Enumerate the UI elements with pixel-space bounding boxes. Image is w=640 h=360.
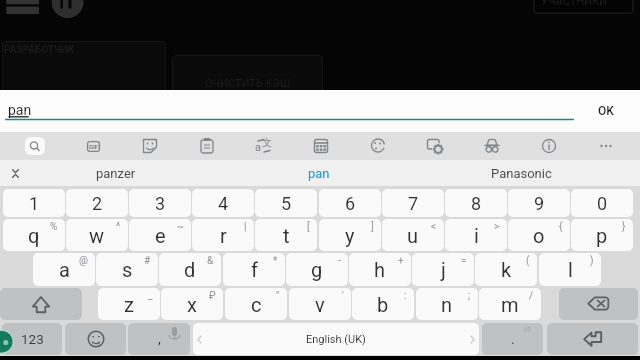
staticText: (	[526, 255, 530, 267]
button[interactable]: p	[571, 219, 633, 251]
button[interactable]: Menu	[0, 0, 48, 14]
staticText: ОЧИСТИТЬ КЭШ	[205, 77, 291, 90]
button[interactable]: b	[352, 288, 414, 320]
button[interactable]: k	[475, 253, 537, 286]
staticText: v	[315, 293, 325, 316]
button[interactable]: Clipboard	[193, 132, 221, 160]
button[interactable]: Info	[535, 132, 563, 160]
staticText: z	[124, 293, 134, 316]
staticText: '	[342, 290, 344, 302]
staticText: {	[559, 221, 563, 233]
staticText: j	[441, 258, 446, 281]
staticText: 7	[408, 193, 419, 214]
button[interactable]: c	[225, 288, 287, 320]
button[interactable]: r	[192, 219, 254, 251]
button[interactable]: q	[3, 219, 65, 251]
button[interactable]: English (UK)	[193, 323, 479, 355]
button[interactable]: z	[98, 288, 160, 320]
button[interactable]: Translate	[250, 132, 278, 160]
button[interactable]: Enter	[547, 323, 638, 355]
button[interactable]: ,	[128, 323, 190, 355]
button[interactable]: ОЧИСТИТЬ КЭШ	[172, 55, 323, 95]
staticText: ~	[177, 221, 184, 233]
button[interactable]: 6	[319, 189, 381, 217]
button[interactable]: m	[479, 288, 541, 320]
button[interactable]: Shift	[0, 288, 82, 320]
button[interactable]: Expand	[2, 160, 28, 186]
staticText: Panasonic	[491, 166, 552, 181]
button[interactable]: pan	[217, 160, 420, 186]
staticText: 2	[92, 193, 103, 214]
button[interactable]: d	[159, 253, 221, 286]
staticText: f	[251, 258, 258, 281]
staticText: k	[501, 258, 512, 281]
button[interactable]: j	[412, 253, 474, 286]
button[interactable]: x	[161, 288, 223, 320]
staticText: }	[622, 221, 626, 233]
button[interactable]: Panasonic	[420, 160, 623, 186]
button[interactable]: Calendar	[307, 132, 335, 160]
button[interactable]: l	[539, 253, 601, 286]
staticText: w	[89, 224, 105, 247]
button[interactable]: 3	[129, 189, 191, 217]
button[interactable]: Palette	[364, 132, 392, 160]
button[interactable]: 7	[382, 189, 444, 217]
button[interactable]: v	[289, 288, 351, 320]
button[interactable]: panzer	[14, 160, 217, 186]
staticText: "	[276, 290, 280, 302]
staticText: <	[431, 221, 437, 233]
button[interactable]: 4	[192, 189, 254, 217]
button[interactable]: Incognito	[478, 132, 506, 160]
button[interactable]: Backspace	[559, 288, 638, 320]
button[interactable]: Emoji	[65, 323, 126, 355]
button[interactable]: i	[445, 219, 507, 251]
button[interactable]: Settings	[421, 132, 449, 160]
staticText: 6	[345, 193, 356, 214]
button[interactable]: 5	[255, 189, 317, 217]
staticText: panzer	[96, 166, 136, 181]
button[interactable]: a	[33, 253, 95, 286]
button[interactable]: n	[416, 288, 478, 320]
button[interactable]: 0	[571, 189, 633, 217]
button[interactable]: 9	[508, 189, 570, 217]
button[interactable]: OK	[586, 98, 626, 124]
staticText: 9	[534, 193, 545, 214]
staticText: m	[501, 293, 519, 316]
staticText: r	[220, 224, 227, 247]
button[interactable]: g	[286, 253, 348, 286]
button[interactable]: o	[508, 219, 570, 251]
button[interactable]: u	[382, 219, 444, 251]
staticText: 4	[218, 193, 229, 214]
button[interactable]: f	[223, 253, 285, 286]
button[interactable]: 123	[2, 323, 62, 355]
staticText: i	[474, 224, 479, 247]
staticText: q	[28, 224, 40, 247]
button[interactable]: w	[66, 219, 128, 251]
staticText: 0	[597, 193, 608, 214]
staticText: =	[461, 255, 467, 267]
button[interactable]: More	[592, 132, 620, 160]
staticText: #	[144, 255, 151, 267]
staticText: s	[122, 258, 133, 281]
button[interactable]: GIF	[79, 132, 107, 160]
staticText: d	[184, 258, 196, 281]
button[interactable]: y	[319, 219, 381, 251]
button[interactable]: t	[255, 219, 317, 251]
button[interactable]: s	[96, 253, 158, 286]
staticText: @	[79, 255, 88, 267]
button[interactable]: e	[129, 219, 191, 251]
button[interactable]: .	[482, 323, 543, 355]
button[interactable]: h	[349, 253, 411, 286]
staticText: )	[590, 255, 594, 267]
staticText: РАЗРАБОТЧИК	[4, 44, 75, 56]
button[interactable]: 2	[66, 189, 128, 217]
staticText: [	[307, 221, 310, 233]
button[interactable]: УЧАСТНИКИ	[533, 0, 634, 14]
button[interactable]: Stickers	[136, 132, 164, 160]
button[interactable]: Search	[25, 137, 45, 155]
staticText: a	[59, 258, 70, 281]
staticText: &	[207, 255, 214, 267]
button[interactable]: 1	[3, 189, 65, 217]
button[interactable]: 8	[445, 189, 507, 217]
button[interactable]: РАЗРАБОТЧИК	[2, 41, 166, 97]
